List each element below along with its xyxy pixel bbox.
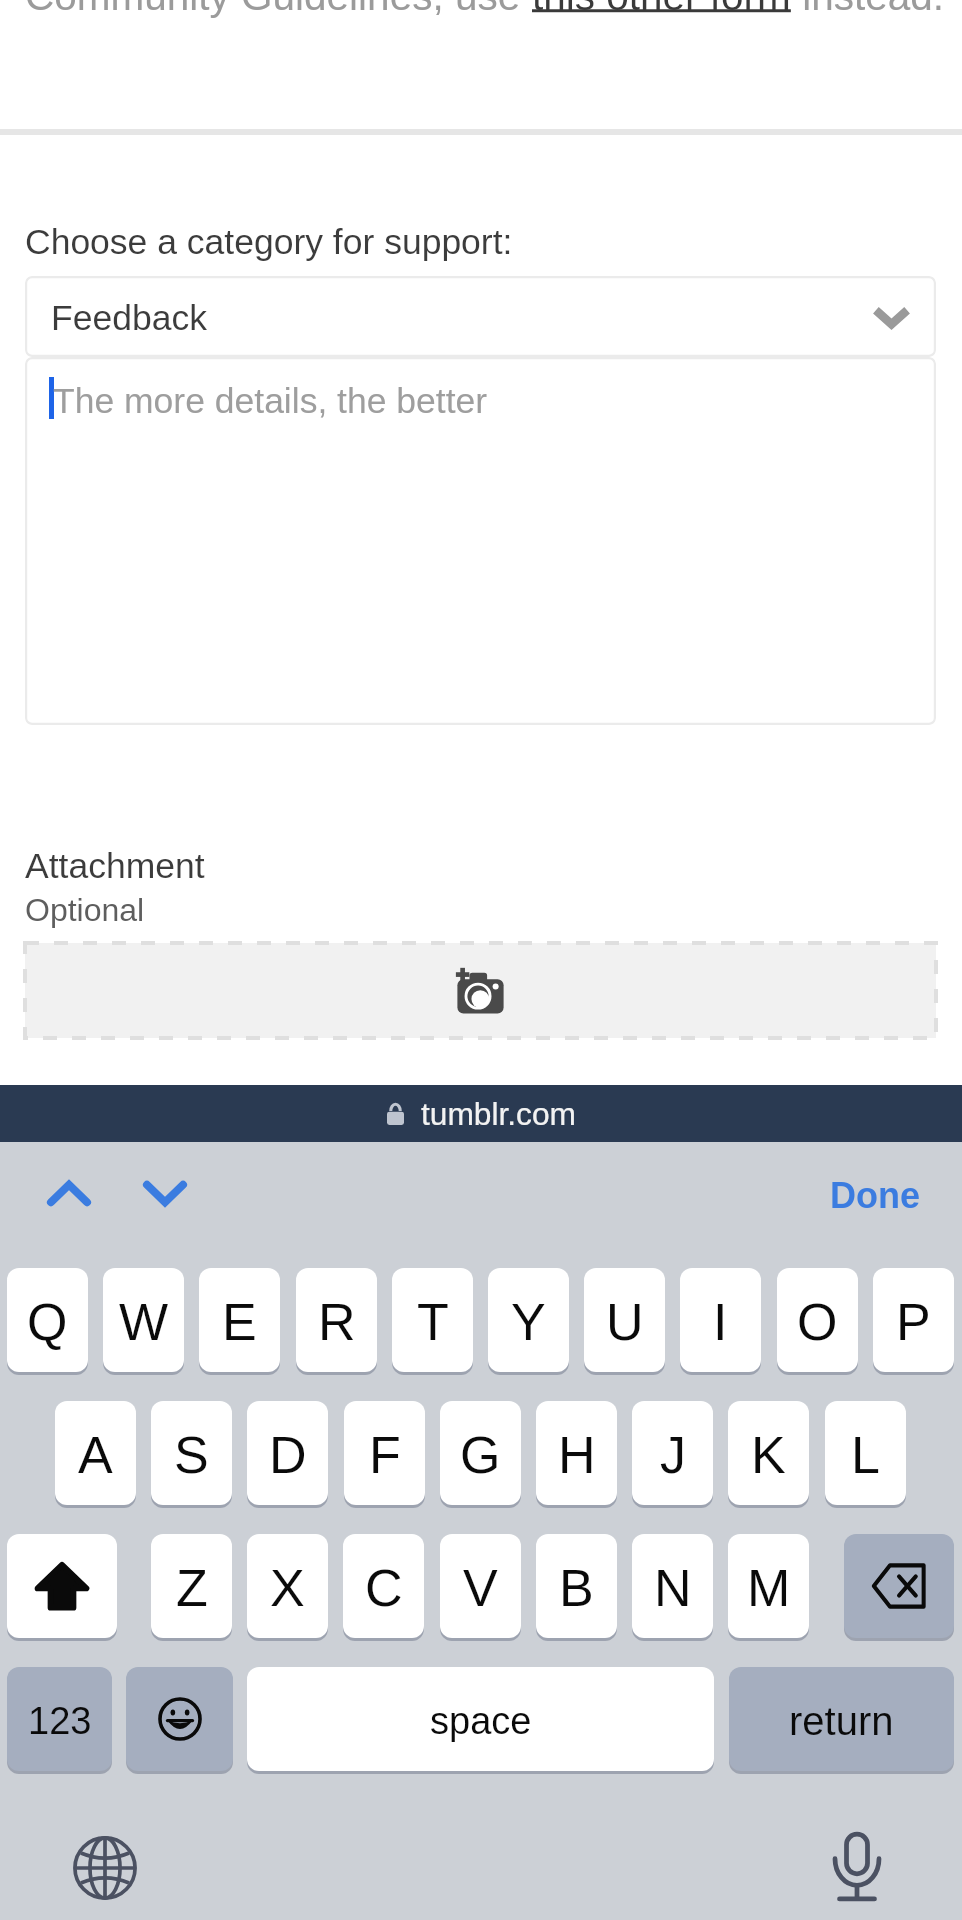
button[interactable]: A (55, 1401, 136, 1505)
button[interactable]: Shift (7, 1534, 117, 1638)
button[interactable]: P (873, 1268, 954, 1372)
staticText: space (430, 1700, 532, 1742)
button[interactable]: Emoji (126, 1667, 233, 1771)
button[interactable]: U (584, 1268, 665, 1372)
button[interactable]: R (296, 1268, 377, 1372)
staticText: M (747, 1559, 791, 1617)
button[interactable]: K (728, 1401, 809, 1505)
button[interactable]: I (680, 1268, 761, 1372)
button[interactable]: Y (488, 1268, 569, 1372)
staticText: tumblr.com (421, 1096, 576, 1131)
staticText: B (559, 1559, 594, 1617)
staticText: Z (176, 1559, 208, 1617)
staticText: Done (830, 1175, 920, 1215)
staticText: R (318, 1293, 356, 1351)
button[interactable]: 123 (7, 1667, 112, 1771)
button[interactable]: Change keyboard language (58, 1822, 152, 1914)
staticText: K (751, 1426, 786, 1484)
button[interactable]: E (199, 1268, 280, 1372)
button[interactable]: S (151, 1401, 232, 1505)
staticText: Optional (25, 892, 145, 928)
staticText: return (789, 1699, 894, 1744)
staticText: U (606, 1293, 644, 1351)
button[interactable]: Dictation (810, 1822, 904, 1914)
staticText: T (417, 1293, 449, 1351)
button[interactable]: Q (7, 1268, 88, 1372)
staticText: this other form (532, 0, 791, 18)
button[interactable]: M (728, 1534, 809, 1638)
staticText: H (558, 1426, 596, 1484)
staticText: Choose a category for support: (25, 222, 513, 262)
button[interactable]: space (247, 1667, 714, 1771)
staticText: E (222, 1293, 257, 1351)
staticText: A (78, 1426, 113, 1484)
staticText: Y (511, 1293, 546, 1351)
staticText: The more details, the better (53, 381, 488, 421)
staticText: F (369, 1426, 401, 1484)
button[interactable]: O (777, 1268, 858, 1372)
staticText: Community Guidelines, use (25, 0, 532, 18)
staticText: V (463, 1559, 498, 1617)
button[interactable]: J (632, 1401, 713, 1505)
button[interactable]: G (440, 1401, 521, 1505)
staticText: L (851, 1426, 880, 1484)
button[interactable]: X (247, 1534, 328, 1638)
button[interactable]: B (536, 1534, 617, 1638)
button[interactable]: T (392, 1268, 473, 1372)
button[interactable]: Z (151, 1534, 232, 1638)
staticText: P (896, 1293, 931, 1351)
staticText: C (365, 1559, 403, 1617)
button[interactable]: return (729, 1667, 954, 1771)
button[interactable]: Next field (143, 1181, 187, 1206)
staticText: G (460, 1426, 501, 1484)
button[interactable]: D (247, 1401, 328, 1505)
button[interactable]: Add photo attachment (25, 943, 936, 1038)
button[interactable]: F (344, 1401, 425, 1505)
button[interactable]: Backspace (844, 1534, 954, 1638)
button[interactable]: Previous field (47, 1181, 91, 1206)
button[interactable]: N (632, 1534, 713, 1638)
button[interactable]: C (343, 1534, 424, 1638)
button[interactable]: Done (810, 1160, 940, 1230)
staticText: N (654, 1559, 692, 1617)
button[interactable]: Feedback (25, 276, 936, 357)
staticText: 123 (28, 1700, 92, 1742)
staticText: O (797, 1293, 838, 1351)
staticText: W (119, 1293, 169, 1351)
staticText: S (174, 1426, 209, 1484)
staticText: I (713, 1293, 728, 1351)
staticText: Feedback (51, 298, 207, 338)
button[interactable]: The more details, the better (25, 357, 936, 725)
button[interactable]: H (536, 1401, 617, 1505)
staticText: J (660, 1426, 686, 1484)
staticText: X (270, 1559, 305, 1617)
button[interactable]: L (825, 1401, 906, 1505)
staticText: Attachment (25, 846, 205, 886)
staticText: Q (27, 1293, 68, 1351)
staticText: D (269, 1426, 307, 1484)
button[interactable]: W (103, 1268, 184, 1372)
button[interactable]: V (440, 1534, 521, 1638)
staticText: instead. (791, 0, 945, 18)
